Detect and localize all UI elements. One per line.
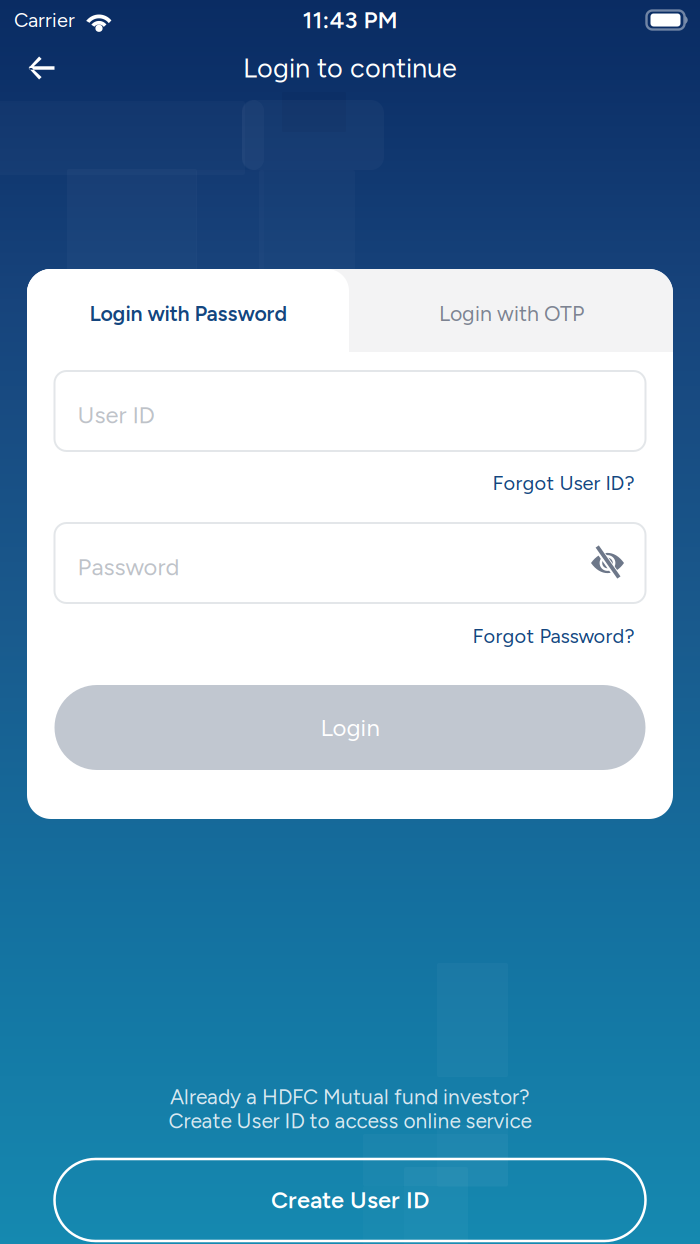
button[interactable]: Forgot Password? xyxy=(54,620,645,652)
staticText: Create User ID to access online service xyxy=(168,1108,531,1133)
staticText: Already a HDFC Mutual fund investor? xyxy=(170,1084,530,1109)
button[interactable]: Forgot User ID? xyxy=(54,467,645,499)
staticText: Password xyxy=(77,553,179,581)
staticText: 11:43 PM xyxy=(302,6,397,34)
staticText: Login with OTP xyxy=(439,301,584,326)
button[interactable]: Login with OTP xyxy=(350,269,673,352)
button[interactable]: Back xyxy=(12,43,70,93)
staticText: Login xyxy=(320,713,379,742)
staticText: Forgot Password? xyxy=(472,624,634,648)
staticText: Forgot User ID? xyxy=(492,471,634,495)
staticText: Create User ID xyxy=(271,1186,429,1214)
button[interactable]: Create User ID xyxy=(54,1159,645,1241)
staticText: Carrier xyxy=(14,8,75,32)
button[interactable]: Login with Password xyxy=(27,269,350,352)
button[interactable]: Login xyxy=(54,685,645,770)
staticText: User ID xyxy=(77,401,154,429)
staticText: Login with Password xyxy=(89,301,287,326)
staticText: Login to continue xyxy=(243,52,457,84)
